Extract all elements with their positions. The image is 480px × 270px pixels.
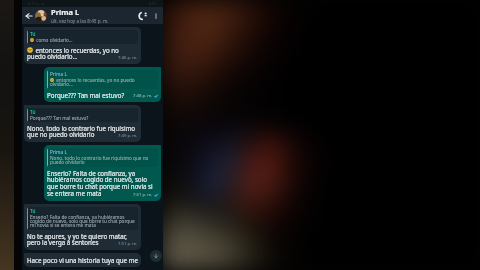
staticText: ￼ como olvidarlo... xyxy=(30,37,73,43)
staticText: 8:45 p.m. xyxy=(28,1,46,6)
staticText: Tú xyxy=(30,208,36,214)
button[interactable]: Call xyxy=(136,9,150,23)
button[interactable]: Prima L xyxy=(44,145,161,201)
button[interactable]: Scroll to bottom xyxy=(150,250,162,262)
button[interactable]: Tú xyxy=(24,204,141,250)
staticText: 84% xyxy=(149,1,157,6)
staticText: Prima L xyxy=(50,149,67,155)
button[interactable]: Tú xyxy=(24,27,141,64)
staticText: Enserio? Falta de confianza, ya hubiéram… xyxy=(47,169,158,198)
staticText: Nono, todo lo contrario fue riquísimo qu… xyxy=(50,155,156,166)
staticText: 7:49 p. m. xyxy=(118,133,138,139)
button[interactable]: Prima L xyxy=(35,7,136,24)
button[interactable]: Hace poco vi una historia tuya que me xyxy=(24,253,141,267)
button[interactable]: Prima L xyxy=(44,67,161,102)
staticText: ￼ entonces lo recuerdas, yo no puedo olv… xyxy=(27,46,138,61)
staticText: Porque??? Tan mal estuvo? xyxy=(47,91,141,99)
staticText: 7:51 p. m. xyxy=(118,241,138,247)
staticText: 7:46 p. m. xyxy=(118,55,138,61)
staticText: Tú xyxy=(30,109,36,115)
staticText: Prima L xyxy=(51,7,80,17)
staticText: últ. vez hoy a las 8:45 p. m. xyxy=(51,18,109,24)
staticText: Prima L xyxy=(50,71,67,77)
staticText: No te apures, y yo te quiero matar, pero… xyxy=(27,232,138,247)
staticText: Nono, todo lo contrario fue riquísimo qu… xyxy=(27,124,138,139)
staticText: Tú xyxy=(30,31,36,37)
button[interactable]: More options xyxy=(150,10,162,22)
staticText: 7:48 p. m. xyxy=(133,93,153,99)
staticText: Porque??? Tan mal estuvo? xyxy=(30,115,89,121)
button[interactable]: Tú xyxy=(24,105,141,142)
staticText: 7:51 p. m. xyxy=(133,192,153,198)
staticText: ￼ entonces lo recuerdas, yo no puedo olv… xyxy=(50,77,156,88)
button[interactable]: Back xyxy=(23,10,34,21)
staticText: Enserio? Falta de confianza, ya hubiéram… xyxy=(30,214,136,229)
staticText: Hace poco vi una historia tuya que me xyxy=(27,256,138,264)
